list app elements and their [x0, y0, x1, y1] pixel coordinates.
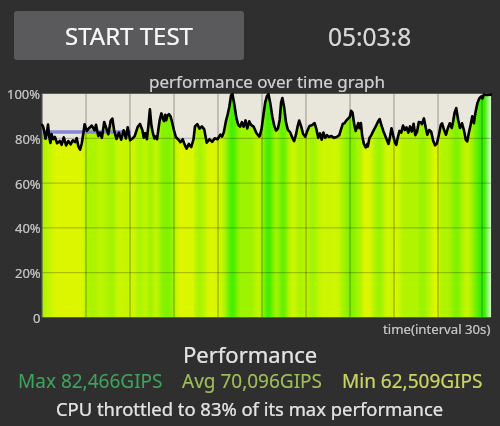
staticText: time(interval 30s)	[383, 320, 491, 338]
staticText: 60%	[15, 175, 41, 193]
staticText: performance over time graph	[149, 70, 385, 93]
staticText: 20%	[15, 264, 41, 282]
staticText: Performance	[183, 339, 318, 369]
staticText: 80%	[15, 130, 41, 148]
button[interactable]: START TEST	[14, 11, 244, 60]
staticText: Min 62,509GIPS	[342, 368, 483, 394]
staticText: CPU throttled to 83% of its max performa…	[56, 396, 444, 421]
staticText: 100%	[7, 85, 41, 103]
staticText: 05:03:8	[328, 20, 412, 53]
staticText: 0	[33, 309, 41, 327]
staticText: 40%	[15, 219, 41, 237]
staticText: START TEST	[65, 19, 193, 52]
staticText: Avg 70,096GIPS	[182, 368, 323, 394]
staticText: Max 82,466GIPS	[18, 368, 163, 394]
